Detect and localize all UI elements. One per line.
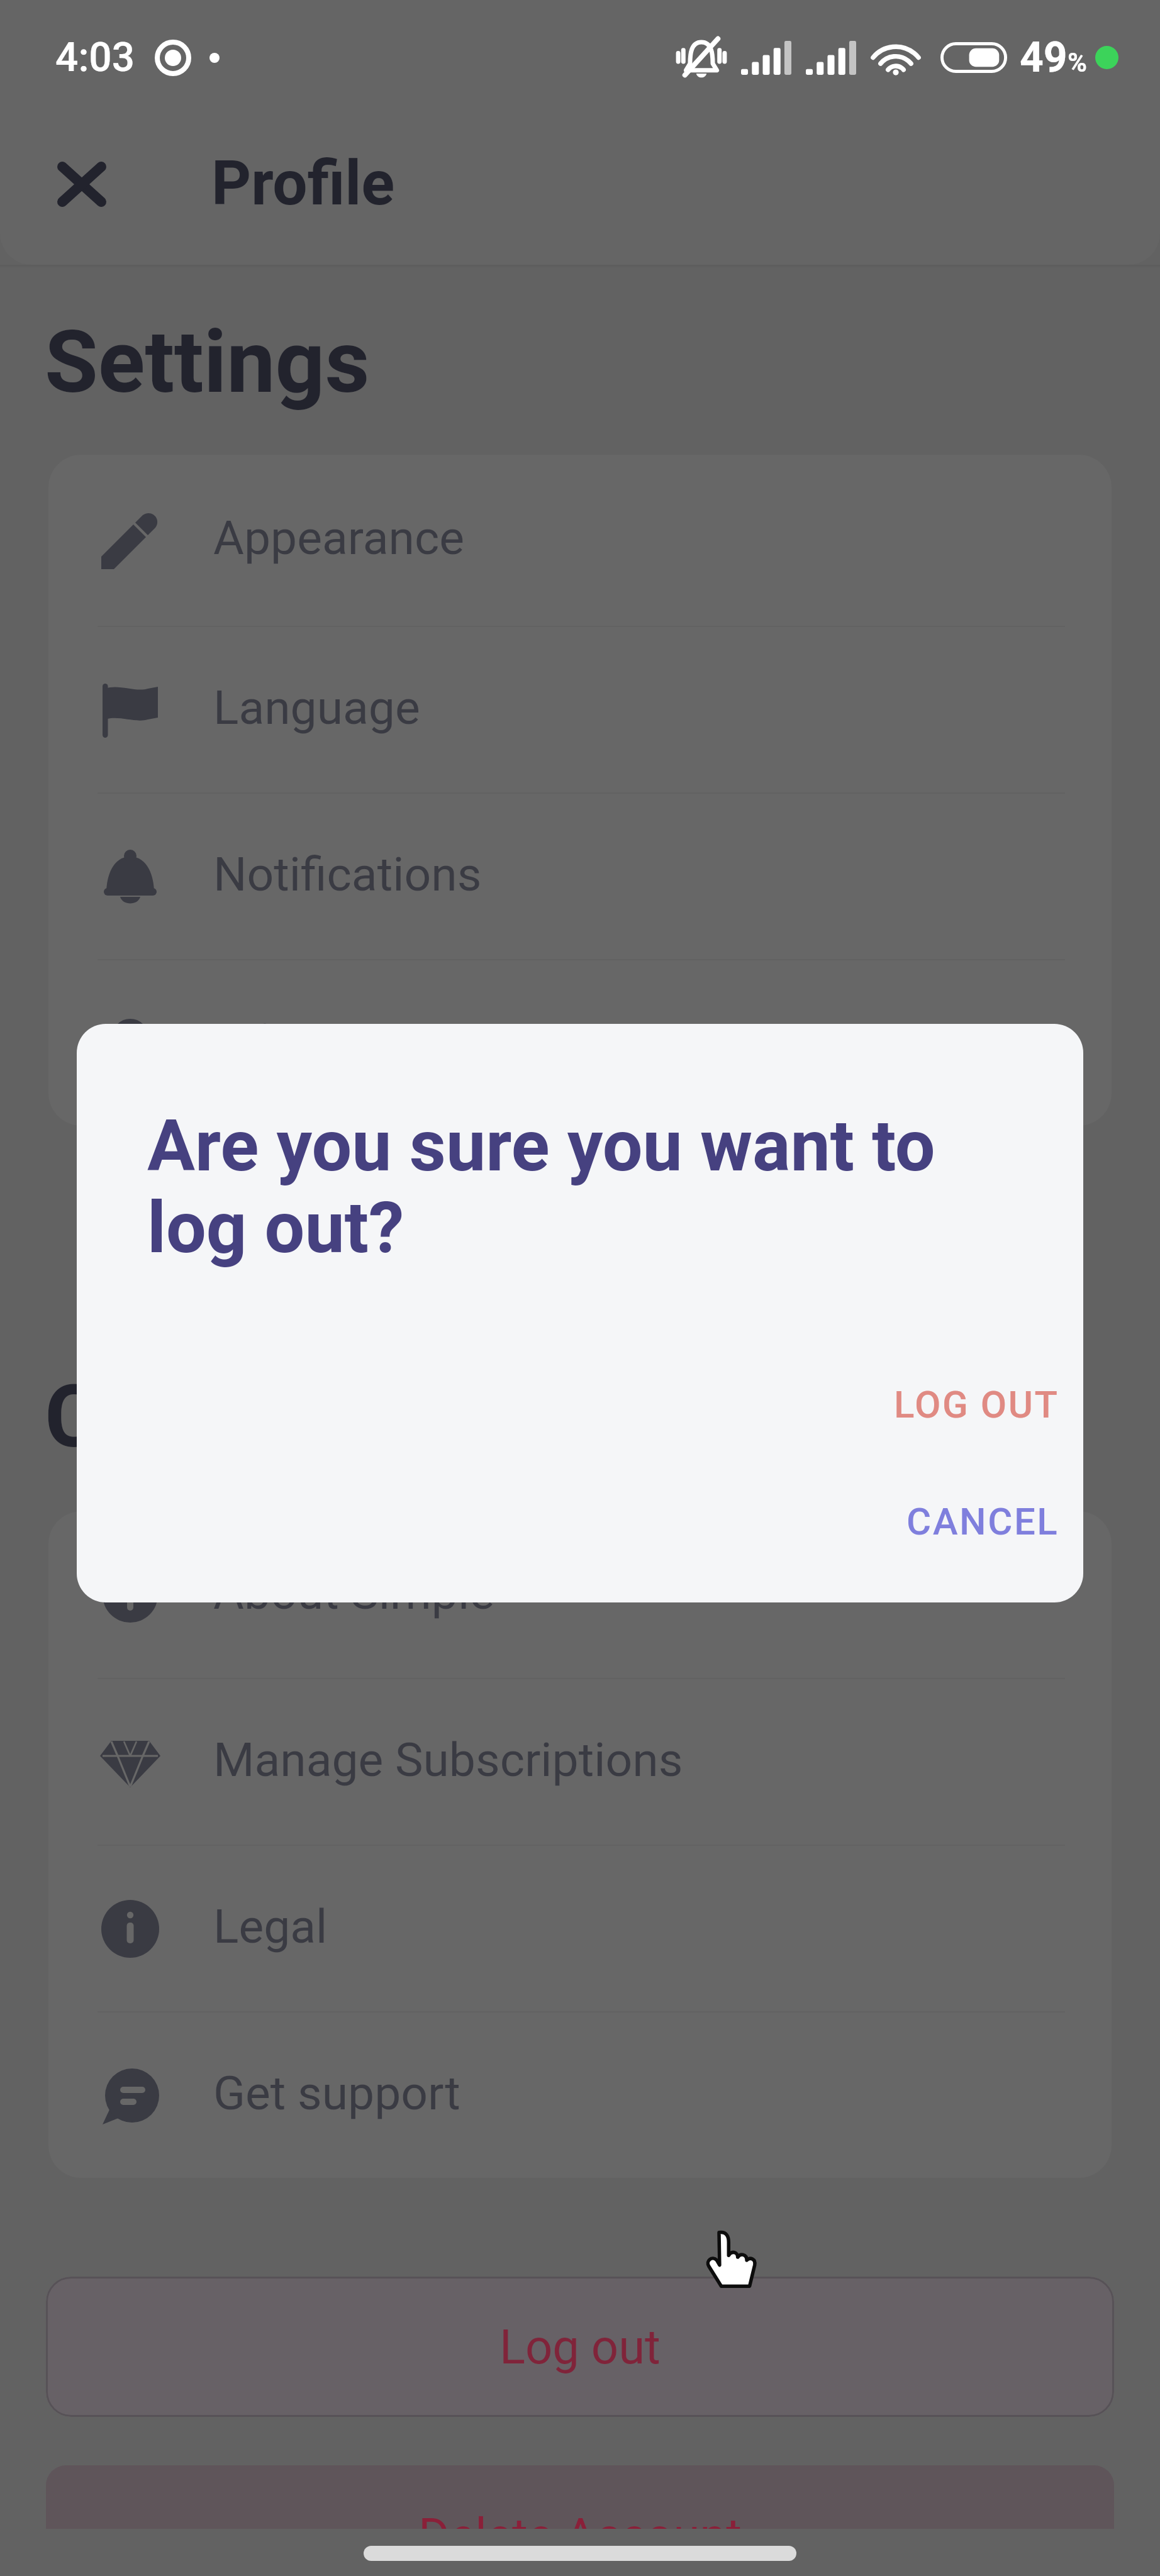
staticText: Are you sure you want to log out?	[147, 1104, 935, 1270]
staticText: Language	[213, 680, 420, 735]
staticText: %	[1068, 47, 1088, 78]
button[interactable]: Log out	[46, 2277, 1114, 2417]
staticText: LOG OUT	[894, 1382, 1059, 1426]
staticText: Legal	[213, 1899, 328, 1954]
button[interactable]: Manage Subscriptions	[48, 1679, 1112, 1845]
button[interactable]: About Simple	[48, 1511, 1112, 1678]
button[interactable]: Privacy	[48, 960, 1112, 1126]
button[interactable]: CANCEL	[880, 1482, 1083, 1561]
staticText: Manage Subscriptions	[213, 1732, 683, 1787]
staticText: Profile	[211, 147, 395, 219]
staticText: 4:03	[55, 34, 135, 81]
button[interactable]: Close	[25, 134, 138, 247]
staticText: About Simple	[213, 1565, 494, 1620]
staticText: 49	[1020, 33, 1068, 82]
button[interactable]: Get support	[48, 2012, 1112, 2178]
staticText: Settings	[45, 311, 370, 413]
staticText: Delete Account	[418, 2507, 742, 2529]
staticText: Community	[45, 1366, 494, 1468]
staticText: CANCEL	[906, 1499, 1059, 1543]
staticText: Privacy	[213, 1013, 366, 1069]
button[interactable]: Notifications	[48, 794, 1112, 959]
staticText: Appearance	[213, 510, 464, 565]
button[interactable]: Language	[48, 627, 1112, 792]
staticText: Notifications	[213, 847, 482, 902]
button[interactable]: Legal	[48, 1846, 1112, 2011]
button[interactable]: Appearance	[48, 455, 1112, 626]
button[interactable]: Delete Account	[46, 2465, 1114, 2529]
staticText: Get support	[213, 2065, 460, 2121]
staticText: Log out	[499, 2319, 661, 2375]
button[interactable]: LOG OUT	[867, 1365, 1083, 1444]
